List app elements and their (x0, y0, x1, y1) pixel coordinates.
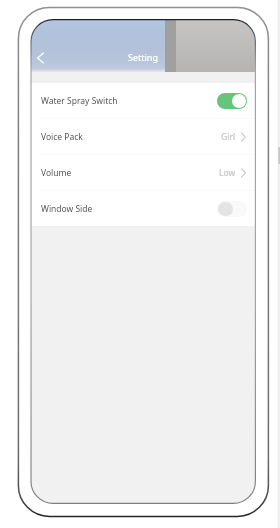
button[interactable]: Water Spray Switch (31, 83, 255, 118)
staticText: Window Side (41, 203, 93, 215)
button[interactable]: Window Side (31, 191, 255, 226)
staticText: Setting (128, 51, 158, 63)
button[interactable]: Voice Pack (31, 119, 255, 154)
staticText: Low (219, 167, 236, 179)
staticText: Volume (41, 167, 72, 179)
staticText: Voice Pack (41, 131, 83, 143)
staticText: Water Spray Switch (41, 95, 118, 107)
staticText: Girl (221, 131, 236, 143)
button[interactable]: Volume (31, 155, 255, 190)
button[interactable]: Back (31, 46, 52, 70)
button[interactable]: Water Spray Switch, on (217, 93, 247, 109)
button[interactable]: Window Side, off (217, 201, 247, 217)
